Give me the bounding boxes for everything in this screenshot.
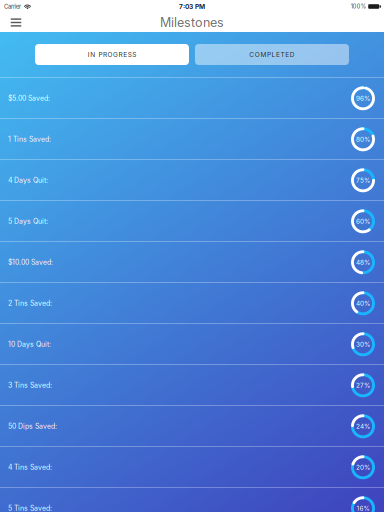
staticText: COMPLETED	[249, 50, 295, 58]
staticText: 4 Tins Saved:	[8, 463, 52, 471]
staticText: 80%	[356, 135, 370, 143]
button[interactable]: 1 Tins Saved:	[0, 119, 384, 160]
staticText: $10.00 Saved:	[8, 258, 53, 266]
staticText: 7:03 PM	[179, 2, 205, 10]
staticText: IN PROGRESS	[88, 50, 136, 58]
staticText: 30%	[356, 340, 370, 348]
staticText: 2 Tins Saved:	[8, 299, 52, 307]
staticText: 40%	[356, 299, 370, 307]
button[interactable]: 10 Days Quit:	[0, 324, 384, 365]
staticText: $5.00 Saved:	[8, 94, 50, 102]
staticText: Milestones	[160, 15, 224, 30]
staticText: 24%	[356, 422, 370, 430]
staticText: 3 Tins Saved:	[8, 381, 52, 389]
staticText: 5 Days Quit:	[8, 217, 48, 225]
button[interactable]: Menu	[4, 13, 28, 32]
staticText: 48%	[356, 258, 370, 266]
staticText: 60%	[356, 217, 370, 225]
staticText: 27%	[356, 381, 370, 389]
button[interactable]: 2 Tins Saved:	[0, 283, 384, 324]
button[interactable]: 3 Tins Saved:	[0, 365, 384, 406]
staticText: 1 Tins Saved:	[8, 135, 51, 143]
button[interactable]: 50 Dips Saved:	[0, 406, 384, 447]
button[interactable]: $10.00 Saved:	[0, 242, 384, 283]
staticText: 96%	[356, 94, 370, 102]
staticText: 20%	[356, 463, 370, 471]
staticText: Carrier	[4, 3, 21, 10]
staticText: 16%	[356, 504, 369, 512]
button[interactable]: 5 Days Quit:	[0, 201, 384, 242]
staticText: 10 Days Quit:	[8, 340, 51, 348]
staticText: 5 Tins Saved:	[8, 504, 52, 512]
button[interactable]: 4 Days Quit:	[0, 160, 384, 201]
staticText: 100%	[351, 3, 366, 10]
staticText: 75%	[356, 176, 370, 184]
button[interactable]: $5.00 Saved:	[0, 78, 384, 119]
button[interactable]: 4 Tins Saved:	[0, 447, 384, 488]
button[interactable]: IN PROGRESS	[35, 44, 189, 65]
button[interactable]: COMPLETED	[195, 44, 349, 65]
button[interactable]: 5 Tins Saved:	[0, 488, 384, 512]
staticText: 4 Days Quit:	[8, 176, 48, 184]
staticText: 50 Dips Saved:	[8, 422, 57, 430]
